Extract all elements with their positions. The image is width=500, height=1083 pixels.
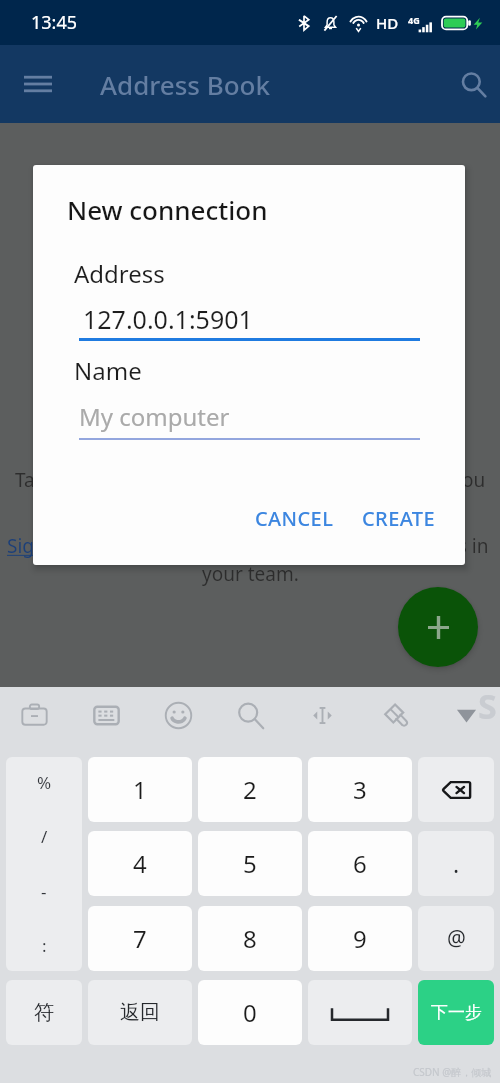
- button[interactable]: Theme: [372, 693, 416, 737]
- staticText: Sign in to sync connections in: [7, 533, 270, 559]
- button[interactable]: 1: [88, 757, 192, 822]
- staticText: .: [453, 848, 460, 879]
- staticText: 下一步: [431, 1002, 482, 1023]
- staticText: -: [41, 880, 47, 903]
- button[interactable]: Sign in to sync connections in: [7, 533, 270, 559]
- button[interactable]: 8: [198, 906, 302, 971]
- button[interactable]: .: [418, 831, 494, 896]
- staticText: 符: [34, 1000, 54, 1025]
- staticText: /: [41, 825, 48, 848]
- button[interactable]: 5: [198, 831, 302, 896]
- button[interactable]: 2: [198, 757, 302, 822]
- staticText: 4: [133, 847, 147, 880]
- staticText: New connection: [67, 192, 268, 227]
- staticText: 3: [353, 773, 367, 806]
- button[interactable]: Emoji: [156, 693, 200, 737]
- button[interactable]: CREATE: [354, 499, 443, 538]
- button[interactable]: 6: [308, 831, 412, 896]
- staticText: Name: [74, 354, 142, 387]
- staticText: HD: [376, 13, 399, 33]
- button[interactable]: Space: [308, 980, 412, 1045]
- staticText: CANCEL: [255, 505, 334, 532]
- button[interactable]: 4: [88, 831, 192, 896]
- staticText: Address: [74, 257, 165, 290]
- button[interactable]: 下一步: [418, 980, 494, 1045]
- staticText: 5: [243, 847, 257, 880]
- button[interactable]: Search: [228, 693, 272, 737]
- staticText: 4G: [408, 14, 420, 26]
- staticText: :: [42, 934, 47, 957]
- button[interactable]: @: [418, 906, 494, 971]
- button[interactable]: 符: [6, 980, 82, 1045]
- staticText: 9: [353, 922, 367, 955]
- staticText: My computer: [79, 400, 230, 433]
- staticText: 1: [133, 773, 147, 806]
- staticText: Tap + to add a new connection, or you: [147, 467, 486, 493]
- staticText: to sync connections in: [291, 533, 489, 559]
- staticText: %: [37, 771, 52, 794]
- button[interactable]: Clipboard: [12, 693, 56, 737]
- staticText: 8: [243, 922, 257, 955]
- button[interactable]: 返回: [88, 980, 192, 1045]
- staticText: S: [478, 683, 497, 729]
- staticText: CREATE: [362, 505, 435, 532]
- button[interactable]: 7: [88, 906, 192, 971]
- button[interactable]: Backspace: [418, 757, 494, 822]
- button[interactable]: 0: [198, 980, 302, 1045]
- button[interactable]: 9: [308, 906, 412, 971]
- staticText: CSDN @醉，倾城: [413, 1065, 492, 1079]
- staticText: 6: [353, 847, 367, 880]
- button[interactable]: symbols: [6, 757, 82, 971]
- staticText: Tap + to add a new connection, or you: [15, 467, 354, 493]
- button[interactable]: CANCEL: [247, 499, 342, 538]
- button[interactable]: Keyboard layout: [84, 693, 128, 737]
- button[interactable]: Hide keyboard: [444, 693, 488, 737]
- button[interactable]: Move cursor: [300, 693, 344, 737]
- staticText: 0: [243, 996, 257, 1029]
- staticText: 2: [243, 773, 257, 806]
- staticText: @: [447, 924, 466, 953]
- staticText: 13:45: [31, 10, 78, 35]
- staticText: Address Book: [100, 67, 271, 102]
- staticText: your team.: [202, 561, 299, 587]
- staticText: 127.0.0.1:5901: [83, 302, 253, 336]
- button[interactable]: Open navigation menu: [13, 59, 63, 109]
- button[interactable]: 3: [308, 757, 412, 822]
- button[interactable]: Add new connection: [398, 587, 478, 667]
- button[interactable]: Search: [448, 59, 498, 109]
- staticText: 返回: [120, 1000, 160, 1025]
- staticText: 7: [133, 922, 147, 955]
